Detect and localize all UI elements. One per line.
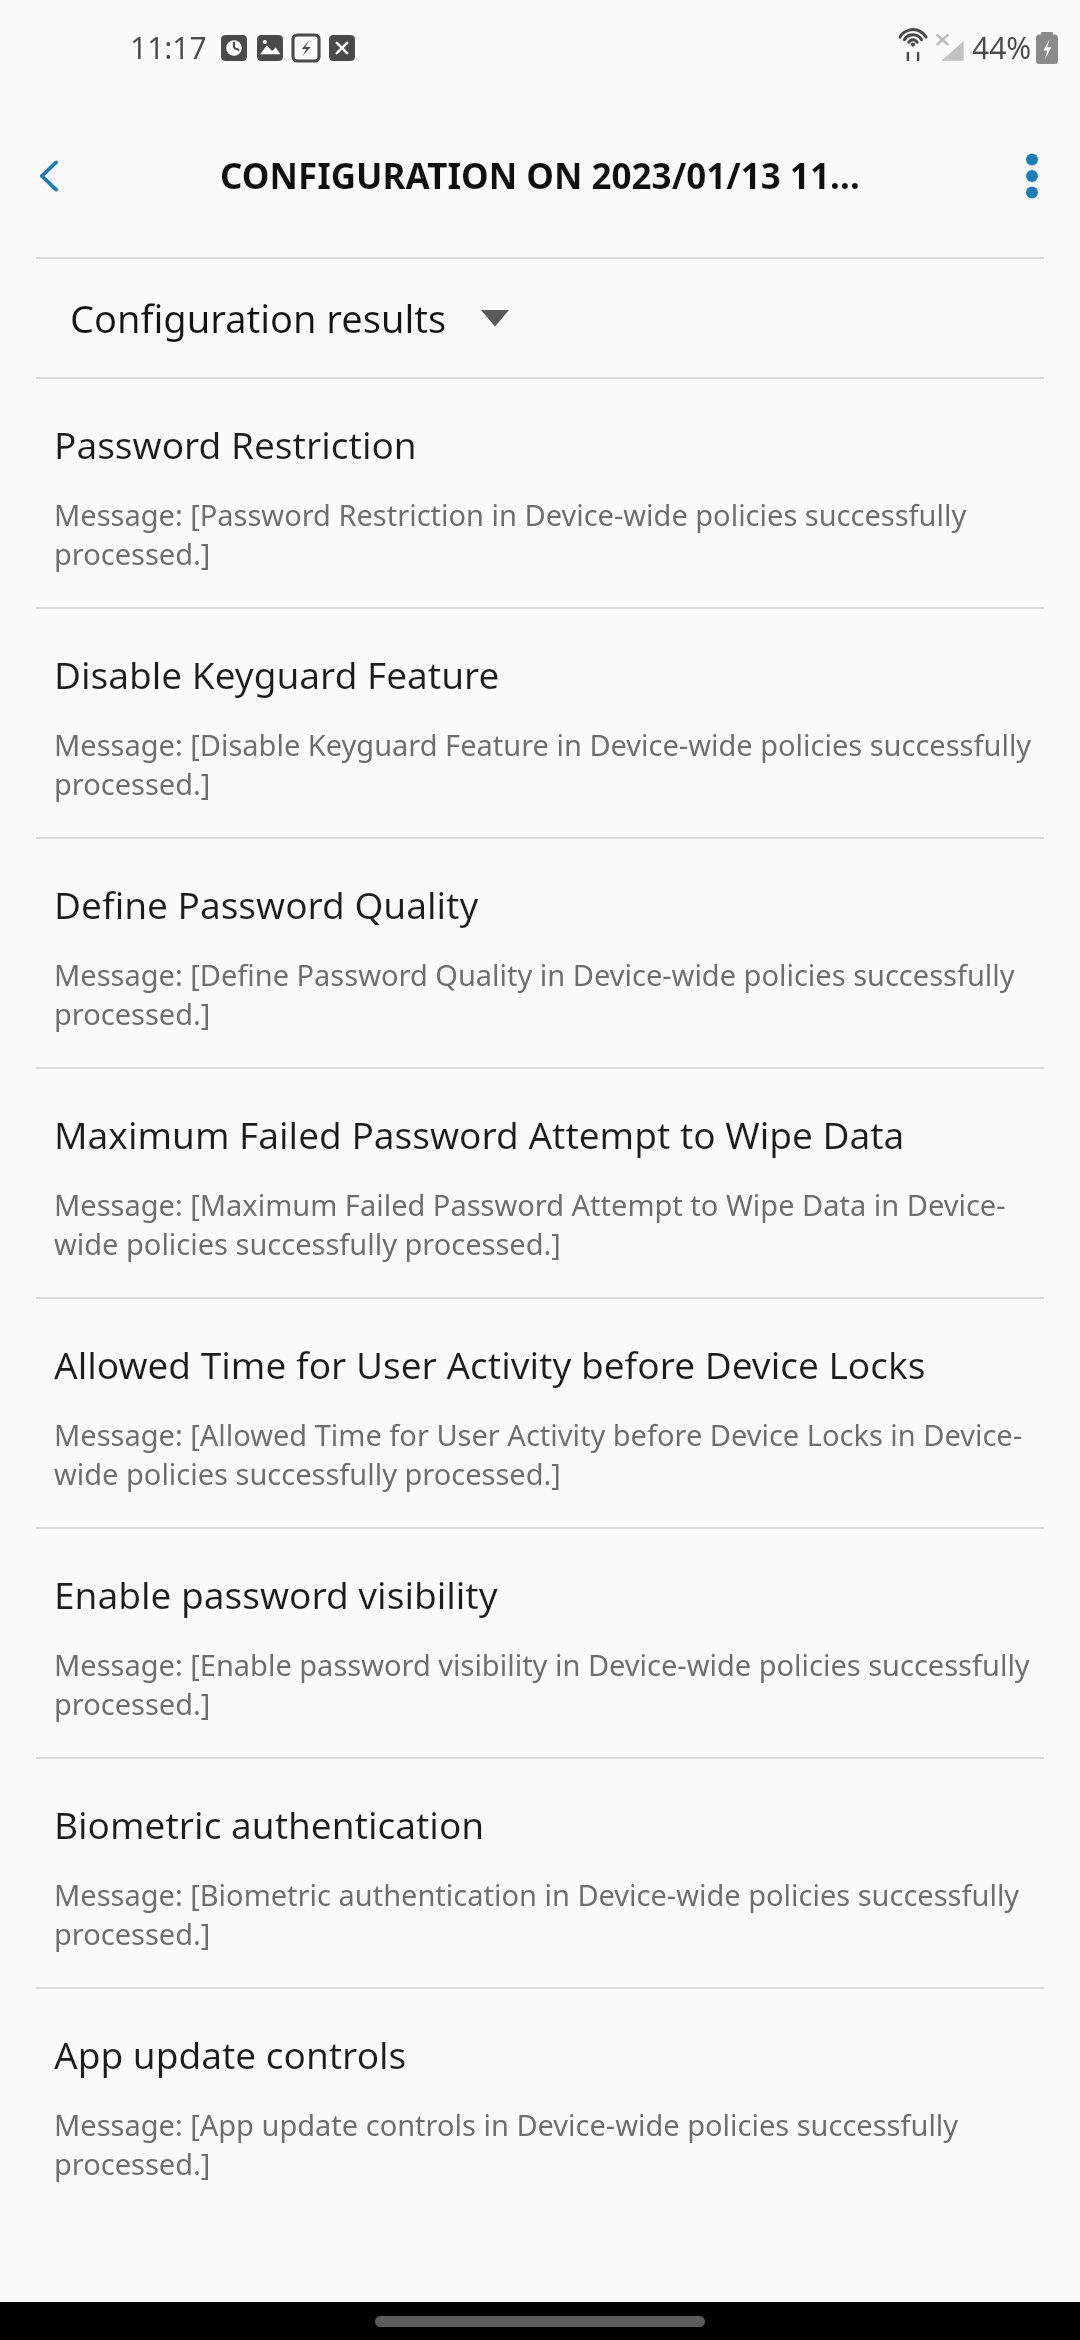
staticText: App update controls — [54, 2029, 407, 2079]
staticText: Message: [Biometric authentication in De… — [54, 1875, 1032, 1953]
staticText: Enable password visibility — [54, 1569, 498, 1619]
staticText: Define Password Quality — [54, 879, 479, 929]
button[interactable]: Password Restriction — [0, 379, 1080, 607]
staticText: 44% — [972, 27, 1032, 68]
staticText: Configuration results — [70, 292, 447, 344]
button[interactable]: Disable Keyguard Feature — [0, 609, 1080, 837]
staticText: Message: [Enable password visibility in … — [54, 1645, 1032, 1723]
button[interactable]: Maximum Failed Password Attempt to Wipe … — [0, 1069, 1080, 1297]
button[interactable]: More options — [1000, 144, 1064, 208]
staticText: Message: [Maximum Failed Password Attemp… — [54, 1185, 1032, 1263]
button[interactable]: App update controls — [0, 1989, 1080, 2217]
button[interactable]: Configuration results — [0, 259, 1080, 377]
button[interactable]: Define Password Quality — [0, 839, 1080, 1067]
button[interactable]: Biometric authentication — [0, 1759, 1080, 1987]
staticText: Disable Keyguard Feature — [54, 649, 500, 699]
button[interactable]: Allowed Time for User Activity before De… — [0, 1299, 1080, 1527]
button[interactable]: Enable password visibility — [0, 1529, 1080, 1757]
staticText: Allowed Time for User Activity before De… — [54, 1339, 926, 1389]
staticText: Maximum Failed Password Attempt to Wipe … — [54, 1109, 905, 1159]
button[interactable]: Back — [18, 144, 82, 208]
staticText: Message: [Password Restriction in Device… — [54, 495, 1032, 573]
staticText: Message: [App update controls in Device-… — [54, 2105, 1032, 2183]
staticText: Message: [Allowed Time for User Activity… — [54, 1415, 1032, 1493]
staticText: Password Restriction — [54, 419, 417, 469]
staticText: CONFIGURATION ON 2023/01/13 11… — [220, 152, 860, 200]
staticText: Message: [Define Password Quality in Dev… — [54, 955, 1032, 1033]
staticText: Biometric authentication — [54, 1799, 485, 1849]
staticText: Message: [Disable Keyguard Feature in De… — [54, 725, 1032, 803]
staticText: 11:17 — [130, 27, 207, 68]
